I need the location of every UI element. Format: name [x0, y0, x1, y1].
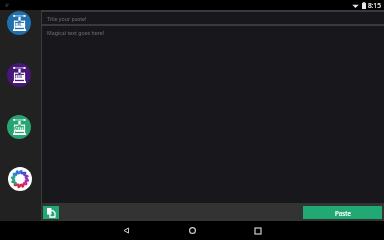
button[interactable]: Copy — [43, 206, 59, 219]
staticText: IMG — [15, 74, 23, 79]
button[interactable]: Paste — [303, 206, 382, 219]
button[interactable]: PASTE — [7, 115, 31, 139]
staticText: Magical text goes here! — [47, 29, 105, 36]
staticText: 8:15 — [368, 1, 381, 10]
button[interactable]: Recents — [248, 221, 267, 240]
staticText: PASTE — [14, 126, 25, 131]
staticText: Paste — [335, 209, 351, 217]
button[interactable]: IMG — [7, 63, 31, 87]
button[interactable]: Back — [117, 221, 136, 240]
staticText: Title your paste! — [47, 15, 87, 22]
button[interactable]: Color palette — [8, 167, 32, 191]
button[interactable]: Home — [183, 221, 202, 240]
staticText: URL — [15, 22, 23, 27]
button[interactable]: Title your paste! — [42, 12, 384, 24]
button[interactable]: URL — [7, 11, 31, 35]
